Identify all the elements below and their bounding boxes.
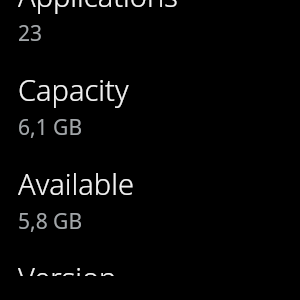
staticText: Capacity [18, 70, 129, 109]
staticText: 6,1 GB [18, 113, 83, 142]
button[interactable]: Available [0, 164, 300, 236]
staticText: 5,8 GB [18, 207, 83, 236]
button[interactable]: Applications [0, 0, 300, 48]
button[interactable]: Version [0, 258, 300, 276]
staticText: Applications [18, 0, 178, 15]
button[interactable]: Capacity [0, 70, 300, 142]
staticText: Available [18, 164, 134, 203]
staticText: Version [18, 258, 117, 276]
staticText: 23 [18, 19, 43, 48]
